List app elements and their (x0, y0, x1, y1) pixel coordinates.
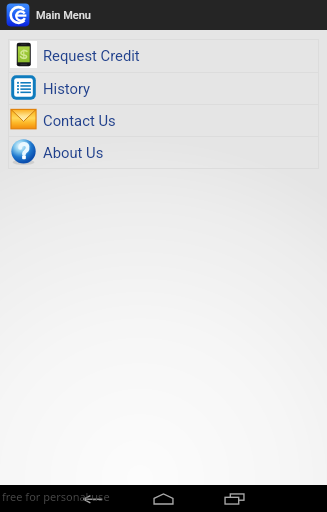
button[interactable]: Home (153, 485, 174, 512)
staticText: About Us (43, 144, 104, 161)
staticText: Main Menu (36, 9, 91, 22)
button[interactable]: Back (82, 485, 103, 512)
staticText: Contact Us (43, 112, 116, 129)
staticText: History (43, 80, 91, 97)
button[interactable]: Request Credit (8, 39, 319, 72)
staticText: Request Credit (43, 47, 140, 64)
button[interactable]: Contact Us (8, 104, 319, 136)
button[interactable]: History (8, 72, 319, 104)
staticText: free for personal use (2, 489, 110, 504)
button[interactable]: Recent apps (224, 485, 245, 512)
button[interactable]: About Us (8, 136, 319, 168)
